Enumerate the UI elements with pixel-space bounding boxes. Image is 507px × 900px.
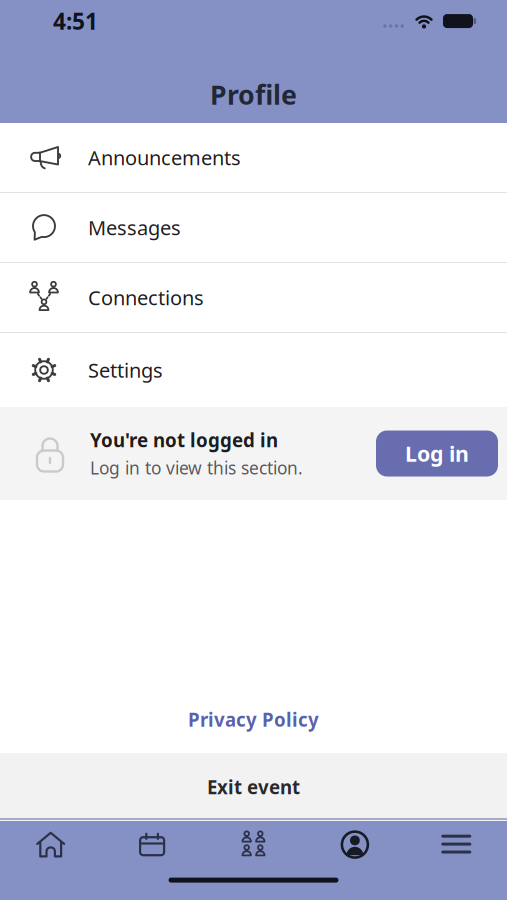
button[interactable]: Exit event (0, 753, 507, 821)
staticText: Privacy Policy (188, 707, 319, 732)
button[interactable]: Connections (0, 263, 507, 333)
button[interactable]: Schedule (101, 820, 203, 870)
button[interactable]: Messages (0, 193, 507, 263)
button[interactable]: Attendees (203, 820, 304, 870)
button[interactable]: Profile (304, 820, 406, 870)
button[interactable]: Log in (376, 430, 498, 476)
staticText: Messages (88, 214, 181, 241)
button[interactable]: Privacy Policy (188, 707, 319, 732)
staticText: Announcements (88, 144, 241, 171)
staticText: Log in (405, 439, 469, 468)
button[interactable]: Announcements (0, 123, 507, 193)
staticText: Settings (88, 357, 163, 383)
button[interactable]: Settings (0, 333, 507, 407)
staticText: Connections (88, 284, 204, 311)
staticText: You're not logged in (90, 428, 278, 452)
staticText: Log in to view this section. (90, 456, 303, 479)
staticText: Exit event (207, 775, 300, 799)
button[interactable]: More (406, 820, 507, 870)
staticText: 4:51 (53, 6, 98, 36)
staticText: Profile (210, 77, 297, 112)
button[interactable]: Home (0, 820, 101, 870)
